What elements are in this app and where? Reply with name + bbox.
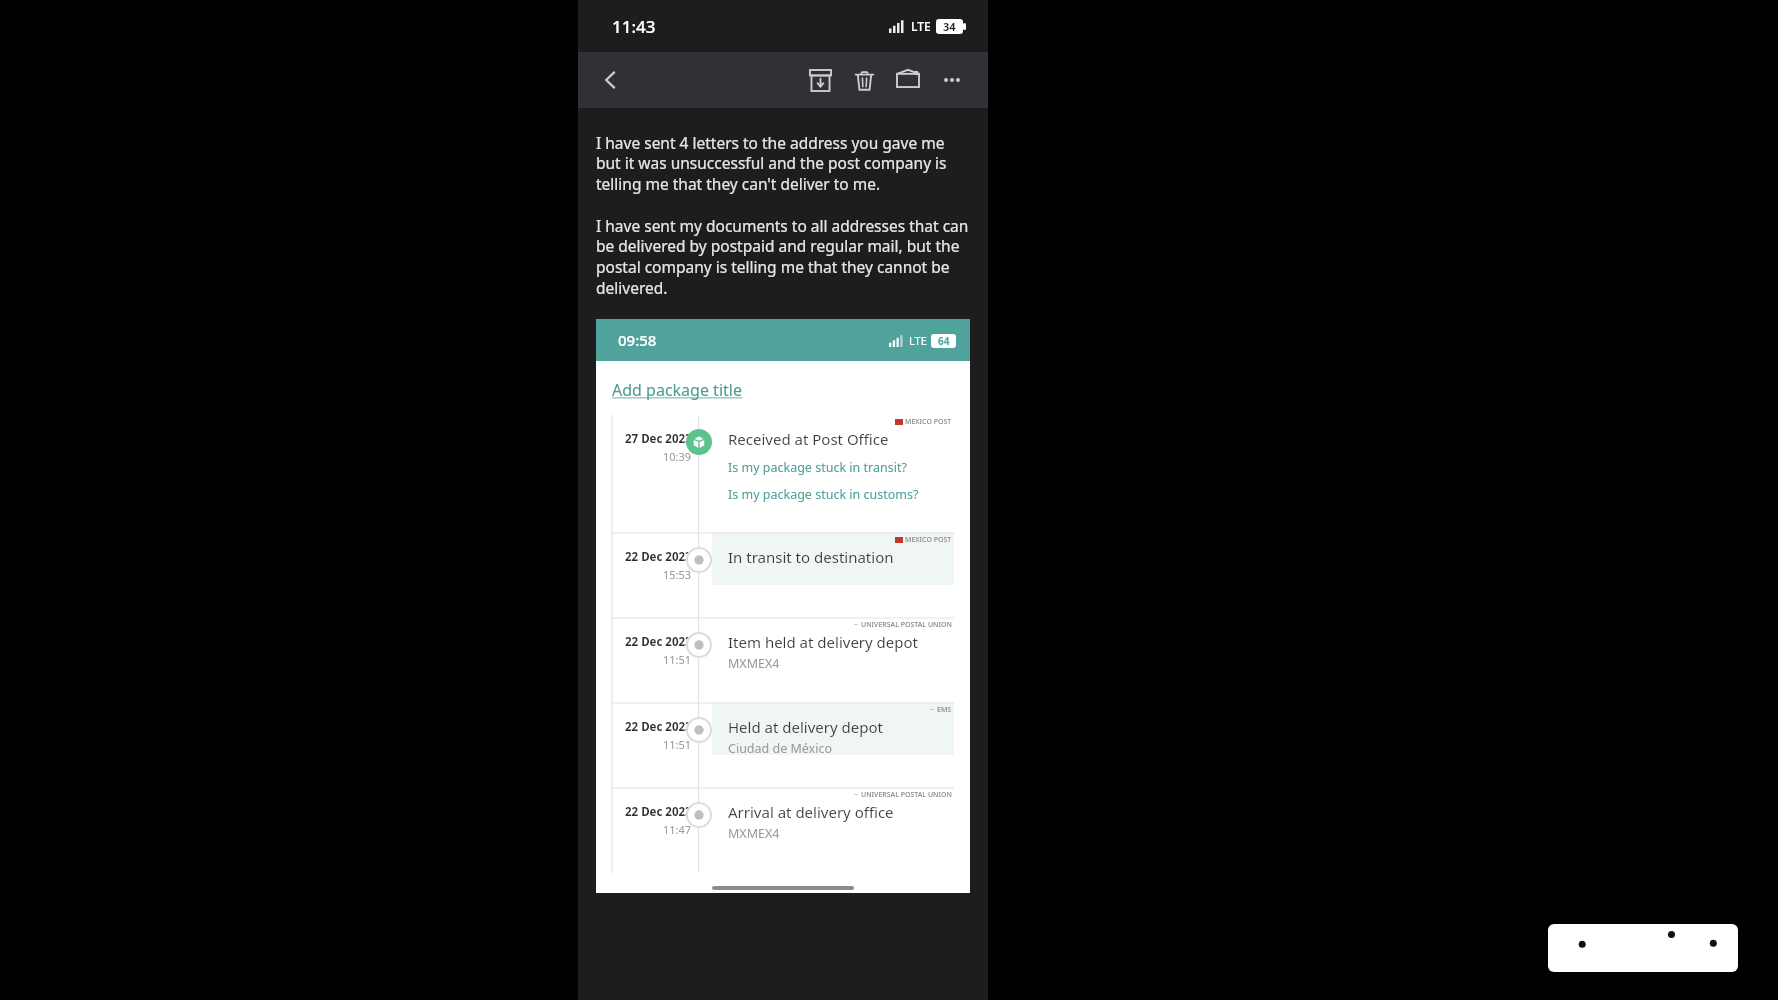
staticText: 11:47 [663,822,692,837]
staticText: 09:58 [618,330,657,350]
staticText: Is my package stuck in transit? [728,459,907,476]
button[interactable]: 22 Dec 2023 [612,788,954,873]
staticText: MXMEX4 [728,825,780,842]
staticText: UNIVERSAL POSTAL UNION [861,790,952,800]
staticText: 11:43 [612,15,656,38]
button[interactable]: 27 Dec 2023 [612,415,954,533]
staticText: ~ [854,790,859,800]
staticText: LTE [909,333,927,348]
staticText: 64 [938,334,950,348]
staticText: 22 Dec 2023 [625,634,692,650]
staticText: 27 Dec 2023 [625,431,692,447]
staticText: 15:53 [663,567,692,582]
staticText: 10:39 [663,449,692,464]
staticText: Received at Post Office [728,429,889,449]
staticText: 34 [943,19,956,34]
staticText: Item held at delivery depot [728,632,918,652]
staticText: 11:51 [663,652,692,667]
button[interactable]: 22 Dec 2023 [612,703,954,788]
button[interactable]: Is my package stuck in customs? [728,486,919,503]
staticText: MXMEX4 [728,655,780,672]
button[interactable]: More options [930,58,974,102]
staticText: In transit to destination [728,547,894,567]
button[interactable]: Mark unread [886,58,930,102]
staticText: ~ [930,705,935,715]
staticText: Ciudad de México [728,740,833,757]
staticText: I have sent 4 letters to the address you… [596,132,970,195]
staticText: Is my package stuck in customs? [728,486,919,503]
button[interactable]: Archive [798,58,842,102]
button[interactable]: Add package title [612,379,742,401]
button[interactable]: 22 Dec 2023 [612,618,954,703]
staticText: 22 Dec 2023 [625,804,692,820]
staticText: 22 Dec 2023 [625,719,692,735]
staticText: ~ [854,620,859,630]
staticText: Arrival at delivery office [728,802,894,822]
button[interactable]: 22 Dec 2023 [612,533,954,618]
staticText: I have sent my documents to all addresse… [596,215,970,299]
staticText: Add package title [612,379,742,401]
staticText: EMS [937,705,952,715]
staticText: 22 Dec 2023 [625,549,692,565]
button[interactable]: Is my package stuck in transit? [728,459,907,476]
staticText: MEXICO POST [905,535,952,545]
button[interactable]: Delete [842,58,886,102]
staticText: UNIVERSAL POSTAL UNION [861,620,952,630]
staticText: LTE [911,18,931,34]
staticText: MEXICO POST [905,417,952,427]
button[interactable]: Back [590,59,632,101]
staticText: Held at delivery depot [728,717,883,737]
staticText: 11:51 [663,737,692,752]
